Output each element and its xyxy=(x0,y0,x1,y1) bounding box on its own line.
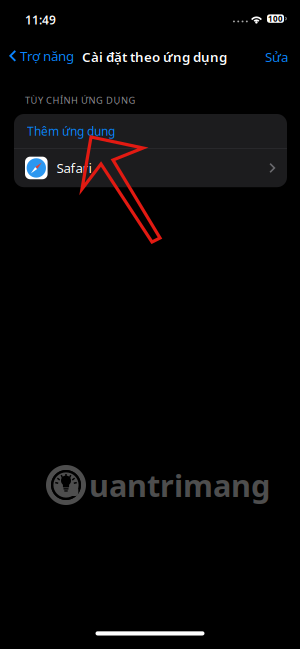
button[interactable]: Sửa xyxy=(265,48,288,66)
staticText: Trợ năng xyxy=(20,47,74,65)
staticText: 100 xyxy=(268,13,283,24)
staticText: Thêm ứng dụng xyxy=(27,123,115,139)
staticText: Sửa xyxy=(265,48,288,66)
staticText: TÙY CHỈNH ỨNG DỤNG xyxy=(25,94,135,106)
staticText: uantrimang xyxy=(89,465,270,505)
staticText: Cài đặt theo ứng dụng xyxy=(82,48,227,66)
button[interactable]: Trợ năng xyxy=(9,47,74,65)
staticText: 11:49 xyxy=(25,12,56,28)
button[interactable]: Thêm ứng dụng xyxy=(14,114,287,148)
staticText: Safari xyxy=(57,159,92,177)
button[interactable]: Safari xyxy=(14,149,287,187)
